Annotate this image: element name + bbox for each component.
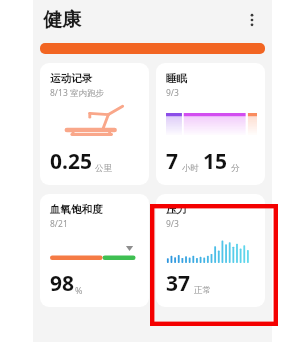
staticText: 压力 (166, 203, 187, 216)
staticText: 8/21 (50, 218, 68, 230)
button[interactable]: 压力 (156, 194, 265, 307)
staticText: 15 (203, 147, 228, 176)
button[interactable]: 运动记录 (40, 63, 149, 185)
staticText: 8/13 室内跑步 (50, 87, 104, 99)
staticText: 37 (166, 269, 191, 298)
button[interactable]: 血氧饱和度 (40, 194, 149, 307)
staticText: % (75, 284, 83, 296)
staticText: 血氧饱和度 (50, 203, 103, 216)
staticText: 7 (166, 147, 179, 176)
button[interactable]: 睡眠 (156, 63, 265, 185)
staticText: 98 (50, 269, 75, 298)
staticText: 分 (231, 163, 240, 174)
staticText: 9/3 (166, 218, 179, 230)
staticText: 睡眠 (166, 72, 187, 85)
staticText: 0.25 (50, 147, 92, 176)
staticText: 9/3 (166, 87, 179, 99)
button[interactable]: More options (238, 6, 266, 34)
staticText: 公里 (95, 163, 112, 174)
staticText: 健康 (43, 8, 81, 32)
button[interactable] (40, 43, 265, 54)
staticText: 运动记录 (50, 72, 92, 85)
staticText: 小时 (182, 163, 199, 174)
staticText: 正常 (194, 285, 211, 296)
